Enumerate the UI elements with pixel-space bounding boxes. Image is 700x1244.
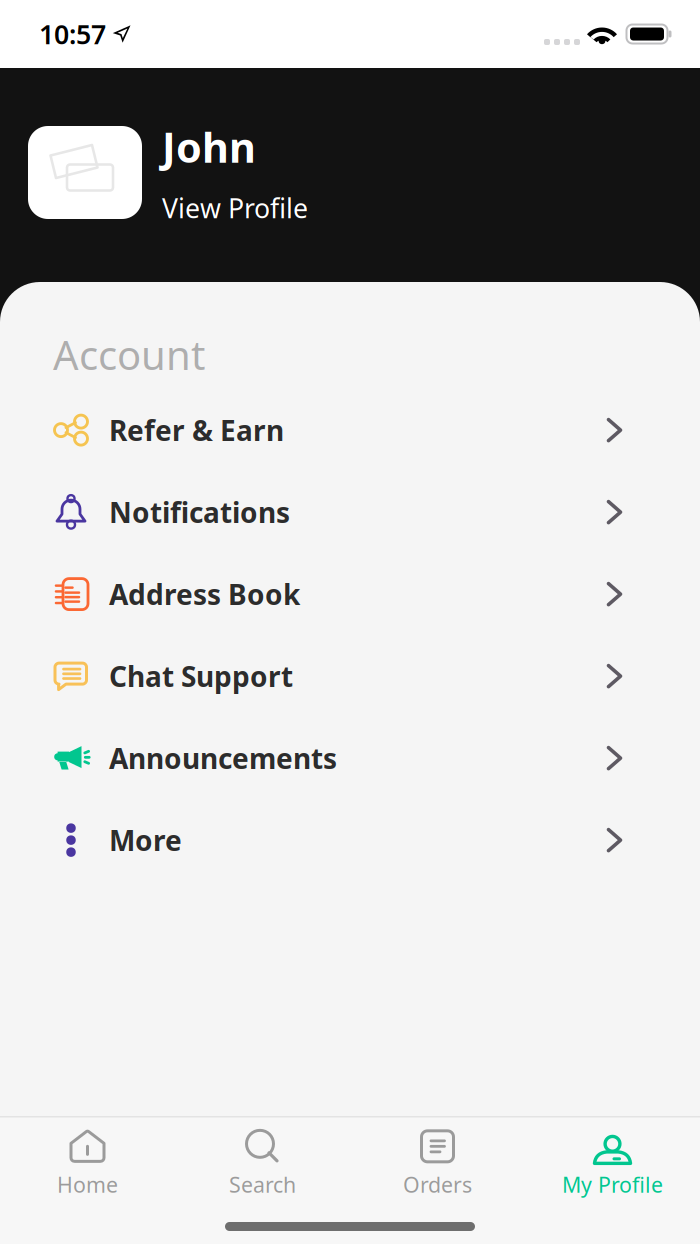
button[interactable]: View Profile bbox=[162, 190, 308, 226]
button[interactable]: Address Book bbox=[0, 553, 700, 635]
button[interactable]: Home bbox=[0, 1119, 175, 1205]
staticText: View Profile bbox=[162, 190, 308, 226]
staticText: Search bbox=[229, 1170, 296, 1199]
button[interactable]: My Profile bbox=[525, 1119, 700, 1205]
staticText: Refer & Earn bbox=[109, 411, 284, 449]
staticText: 10:57 bbox=[39, 16, 106, 52]
staticText: Announcements bbox=[109, 739, 337, 777]
button[interactable]: Notifications bbox=[0, 471, 700, 553]
staticText: Account bbox=[53, 328, 205, 381]
button[interactable]: Profile photo bbox=[28, 126, 142, 219]
button[interactable]: Chat Support bbox=[0, 635, 700, 717]
button[interactable]: Search bbox=[175, 1119, 350, 1205]
staticText: John bbox=[162, 119, 256, 174]
button[interactable]: Orders bbox=[350, 1119, 525, 1205]
staticText: Address Book bbox=[109, 575, 300, 613]
staticText: Home bbox=[57, 1170, 118, 1199]
staticText: More bbox=[109, 821, 182, 859]
button[interactable]: Announcements bbox=[0, 717, 700, 799]
staticText: My Profile bbox=[562, 1170, 663, 1199]
staticText: Orders bbox=[403, 1170, 472, 1199]
button[interactable]: Refer & Earn bbox=[0, 389, 700, 471]
button[interactable]: More bbox=[0, 799, 700, 881]
staticText: Notifications bbox=[109, 493, 290, 531]
staticText: Chat Support bbox=[109, 657, 293, 695]
